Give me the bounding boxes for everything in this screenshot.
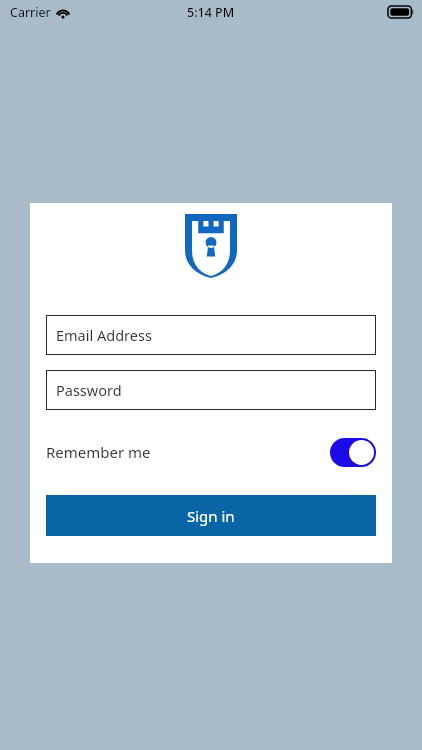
staticText: Email Address: [56, 325, 152, 345]
staticText: Carrier: [10, 4, 51, 21]
staticText: 5:14 PM: [187, 4, 235, 21]
staticText: Password: [56, 380, 122, 400]
button[interactable]: Remember me toggle, on: [330, 438, 376, 467]
button[interactable]: Password: [46, 370, 376, 410]
button[interactable]: Email Address: [46, 315, 376, 355]
other: Security shield logo: [185, 214, 237, 278]
button[interactable]: Remember me: [46, 430, 376, 474]
staticText: Sign in: [187, 506, 235, 526]
staticText: Remember me: [46, 442, 151, 462]
button[interactable]: Sign in: [46, 495, 376, 536]
